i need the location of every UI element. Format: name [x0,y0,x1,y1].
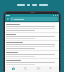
button[interactable] [5,41,59,50]
button[interactable] [5,51,59,58]
button[interactable]: Home [10,66,17,72]
button[interactable]: Menu [6,17,9,20]
button[interactable] [10,17,58,21]
button[interactable]: Search [22,66,29,72]
button[interactable] [5,59,59,66]
button[interactable]: Messages [35,66,42,72]
button[interactable] [5,33,59,40]
button[interactable]: Profile [47,66,54,72]
button[interactable] [5,23,59,32]
